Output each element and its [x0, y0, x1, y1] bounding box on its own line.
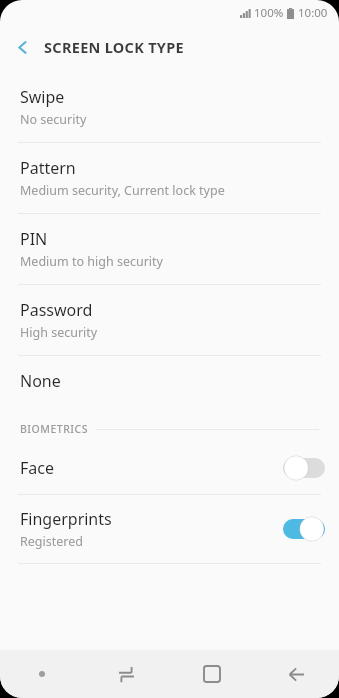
staticText: PIN: [20, 228, 48, 250]
button[interactable]: Menu: [0, 650, 84, 698]
staticText: Medium security, Current lock type: [20, 182, 225, 199]
staticText: SCREEN LOCK TYPE: [44, 37, 184, 57]
button[interactable]: Face: [0, 442, 339, 494]
staticText: Pattern: [20, 157, 76, 179]
button[interactable]: Password: [0, 285, 339, 355]
staticText: Fingerprints: [20, 508, 112, 530]
button[interactable]: On: [283, 516, 325, 542]
staticText: 100%: [254, 5, 284, 21]
staticText: Face: [20, 457, 54, 479]
staticText: BIOMETRICS: [20, 422, 88, 436]
button[interactable]: None: [0, 356, 339, 406]
button[interactable]: Fingerprints: [0, 495, 339, 563]
staticText: None: [20, 370, 61, 392]
staticText: High security: [20, 324, 98, 341]
staticText: 10:00: [298, 5, 328, 21]
staticText: No security: [20, 111, 87, 128]
button[interactable]: PIN: [0, 214, 339, 284]
staticText: Swipe: [20, 86, 65, 108]
staticText: Medium to high security: [20, 253, 163, 270]
button[interactable]: Back: [0, 26, 44, 68]
button[interactable]: Recents: [84, 650, 169, 698]
button[interactable]: Back: [254, 650, 339, 698]
staticText: Registered: [20, 533, 83, 550]
button[interactable]: Pattern: [0, 143, 339, 213]
staticText: Password: [20, 299, 93, 321]
button[interactable]: Home: [169, 650, 254, 698]
button[interactable]: Swipe: [0, 72, 339, 142]
button[interactable]: Off: [283, 455, 325, 481]
